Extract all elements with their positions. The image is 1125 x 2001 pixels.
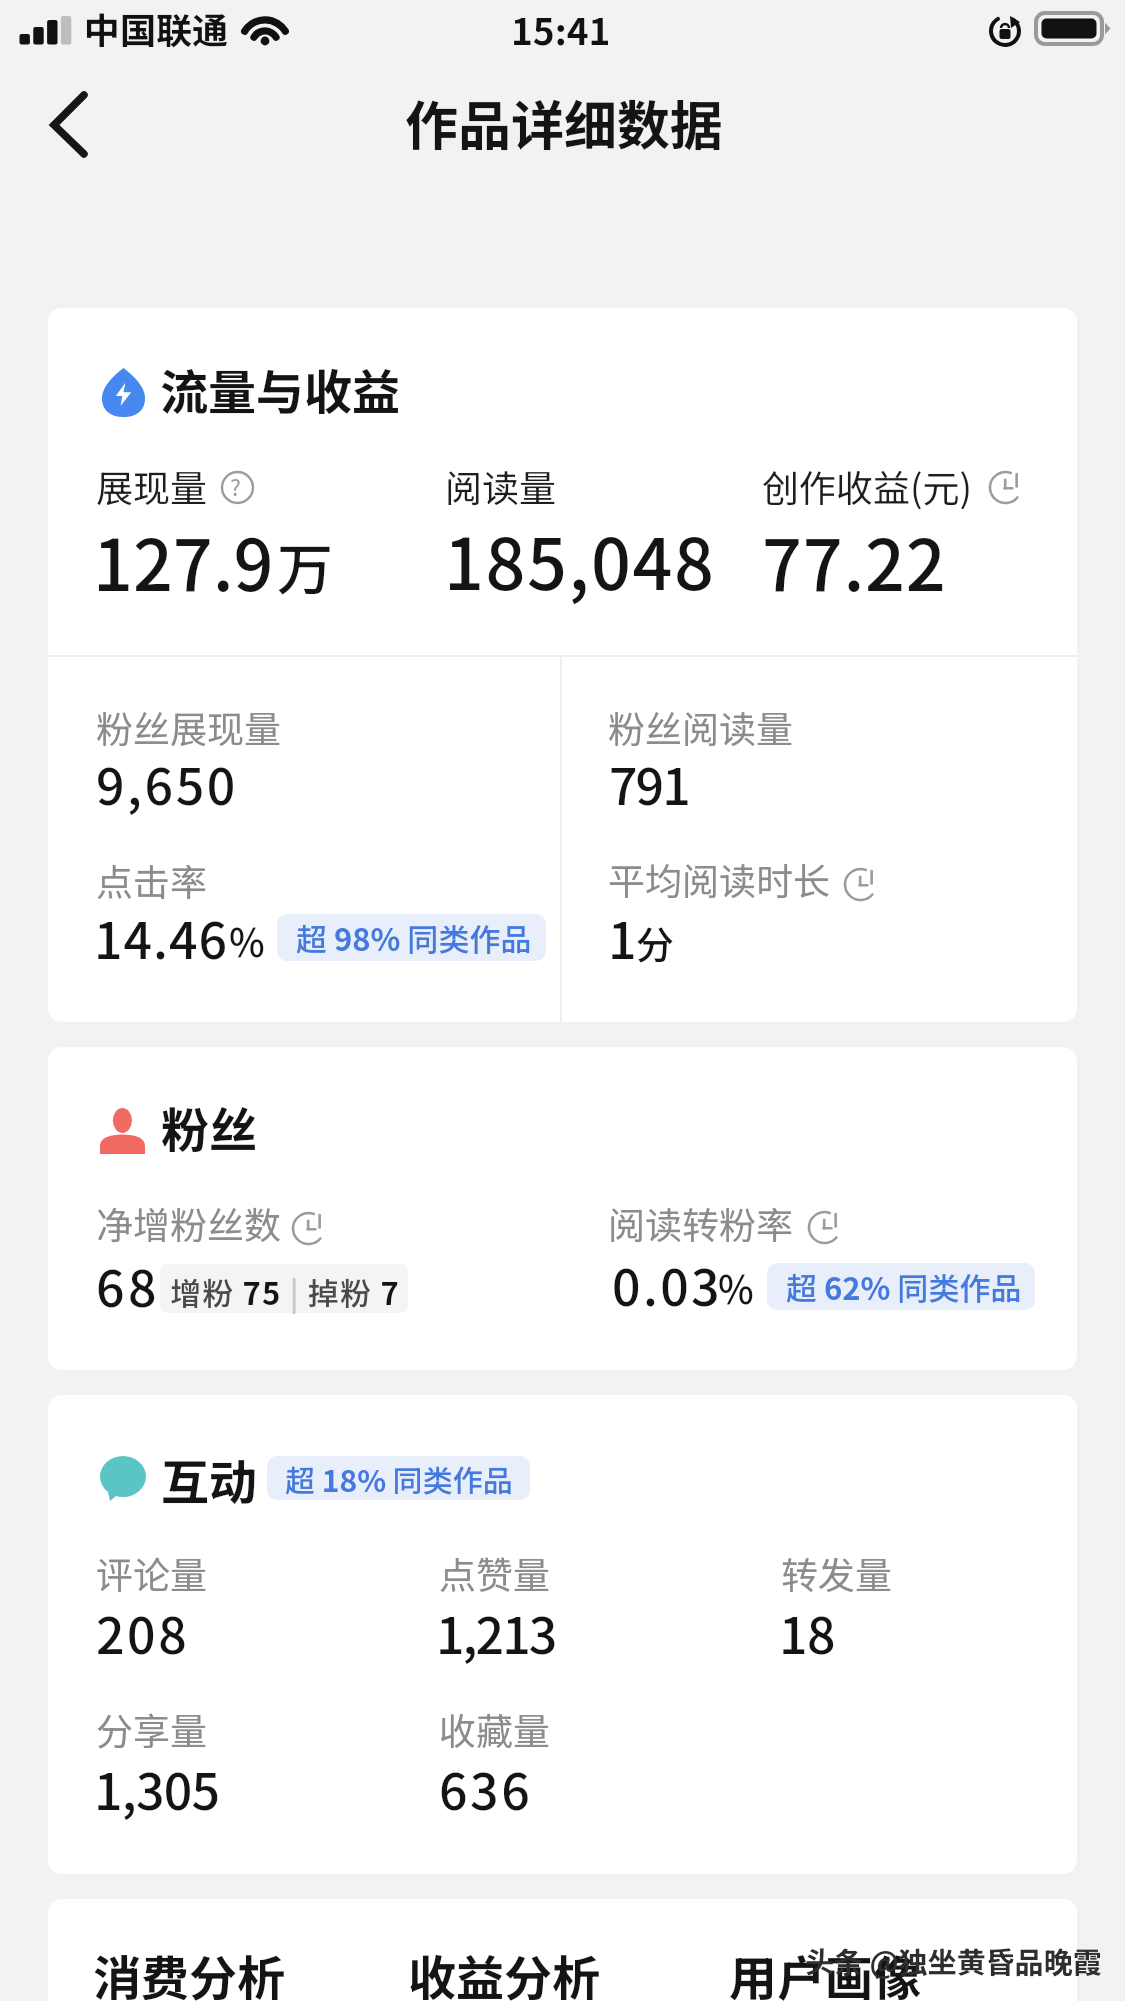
button[interactable]: 消费分析 (67, 1920, 319, 2001)
staticText: 1,213 (436, 1596, 556, 1668)
staticText: 万 (277, 525, 333, 606)
staticText: 粉丝展现量 (96, 700, 281, 754)
other: Updated periodically (290, 1210, 327, 1247)
staticText: 68 (96, 1249, 160, 1321)
button[interactable]: 收益分析 (382, 1920, 634, 2001)
staticText: % (718, 1260, 754, 1315)
staticText: 超 62% 同类作品 (786, 1264, 1022, 1309)
staticText: 791 (609, 747, 689, 819)
staticText: 阅读转粉率 (608, 1196, 793, 1250)
button[interactable] (48, 1395, 1077, 1874)
staticText: 1 (608, 901, 637, 973)
staticText: 1,305 (94, 1752, 220, 1824)
staticText: 点赞量 (439, 1546, 550, 1600)
staticText: 转发量 (781, 1546, 892, 1600)
staticText: 0.03 (612, 1248, 722, 1320)
staticText: 收藏量 (439, 1702, 550, 1756)
staticText: 粉丝阅读量 (608, 700, 793, 754)
staticText: 互动 (161, 1444, 258, 1514)
staticText: 头条 @独坐黄昏品晚霞 (805, 1939, 1102, 1981)
staticText: 创作收益(元) (762, 459, 973, 513)
staticText: 分 (636, 915, 675, 970)
staticText: 评论量 (96, 1546, 207, 1600)
staticText: 净增粉丝数 (96, 1196, 281, 1250)
other: Updated periodically (987, 469, 1024, 506)
staticText: 消费分析 (93, 1940, 286, 2001)
staticText: 作品详细数据 (405, 84, 723, 161)
other: Updated periodically (842, 866, 879, 903)
button[interactable] (48, 308, 1077, 1022)
staticText: 中国联通 (84, 2, 229, 54)
staticText: 分享量 (96, 1702, 207, 1756)
staticText: 展现量 (96, 459, 207, 513)
staticText: 粉丝 (161, 1092, 258, 1162)
staticText: 阅读量 (445, 459, 556, 513)
staticText: % (229, 913, 265, 968)
staticText: 流量与收益 (160, 354, 401, 424)
staticText: 77.22 (762, 510, 947, 611)
button[interactable]: Back (24, 85, 114, 165)
button[interactable] (48, 1047, 1077, 1370)
staticText: 15:41 (511, 2, 611, 56)
staticText: 超 18% 同类作品 (285, 1457, 513, 1500)
staticText: 208 (96, 1596, 190, 1668)
staticText: 14.46 (94, 901, 228, 973)
staticText: 增粉 75 | 掉粉 7 (170, 1269, 400, 1314)
staticText: 185,048 (444, 509, 716, 610)
staticText: 9,650 (96, 747, 238, 819)
staticText: 用户画像 (729, 1940, 922, 2001)
button[interactable]: 用户画像 (703, 1920, 955, 2001)
other: Updated periodically (806, 1209, 843, 1246)
staticText: 点击率 (96, 853, 207, 907)
staticText: 18 (779, 1596, 836, 1668)
staticText: 平均阅读时长 (608, 852, 830, 906)
staticText: 超 98% 同类作品 (296, 915, 532, 960)
staticText: 127.9 (93, 510, 274, 611)
staticText: 收益分析 (408, 1940, 601, 2001)
staticText: ? (230, 469, 241, 502)
staticText: 636 (439, 1752, 533, 1824)
button[interactable]: What is this (219, 469, 256, 506)
